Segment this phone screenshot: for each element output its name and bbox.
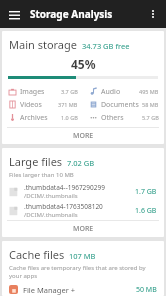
button[interactable]: Images: [2, 85, 83, 98]
staticText: 34.73 GB free: [82, 41, 130, 51]
staticText: /DCIM/.thumbnails: [24, 211, 78, 219]
staticText: /DCIM/.thumbnails: [24, 192, 78, 200]
staticText: 1.0 GB: [61, 114, 78, 121]
button[interactable]: MORE: [2, 128, 164, 144]
staticText: Large files: [9, 154, 63, 169]
staticText: File Manager +: [23, 285, 75, 295]
button[interactable]: Audio: [83, 85, 164, 98]
staticText: .thumbdata4--1967290299: [24, 183, 105, 192]
staticText: Images: [20, 87, 45, 97]
staticText: MORE: [73, 131, 94, 141]
button[interactable]: Videos: [2, 98, 83, 111]
staticText: .thumbdata4-1763508120: [24, 202, 103, 211]
staticText: 3.7 GB: [61, 88, 78, 95]
staticText: 45%: [71, 56, 96, 72]
staticText: Storage Analysis: [30, 7, 113, 21]
staticText: Documents: [101, 100, 139, 110]
button[interactable]: .thumbdata4-1763508120: [2, 201, 164, 220]
button[interactable]: MORE: [2, 221, 164, 237]
staticText: 7.02 GB: [67, 158, 95, 168]
staticText: MORE: [73, 224, 94, 234]
staticText: Files larger than 10 MB: [9, 171, 74, 179]
staticText: 5.7 GB: [142, 114, 159, 121]
staticText: 50 MB: [136, 285, 157, 295]
button[interactable]: .thumbdata4--1967290299: [2, 182, 164, 201]
staticText: 371 MB: [58, 101, 78, 108]
staticText: 1.6 GB: [135, 206, 157, 216]
staticText: Audio: [101, 87, 121, 97]
staticText: Cache files: [9, 247, 65, 262]
staticText: Main storage: [9, 37, 78, 52]
staticText: Videos: [20, 100, 42, 110]
staticText: Others: [101, 113, 124, 123]
staticText: 107 MB: [69, 251, 96, 261]
button[interactable]: Others: [83, 111, 164, 124]
button[interactable]: File Manager +: [2, 283, 164, 296]
staticText: 58 MB: [142, 101, 159, 108]
button[interactable]: Archives: [2, 111, 83, 124]
button[interactable]: More options: [143, 4, 163, 24]
staticText: 495 MB: [139, 88, 159, 95]
staticText: Cache files are temporary files that are…: [9, 264, 157, 280]
button[interactable]: Documents: [83, 98, 164, 111]
staticText: Archives: [20, 113, 48, 123]
staticText: 1.7 GB: [135, 187, 157, 197]
button[interactable]: Open navigation menu: [4, 4, 24, 24]
